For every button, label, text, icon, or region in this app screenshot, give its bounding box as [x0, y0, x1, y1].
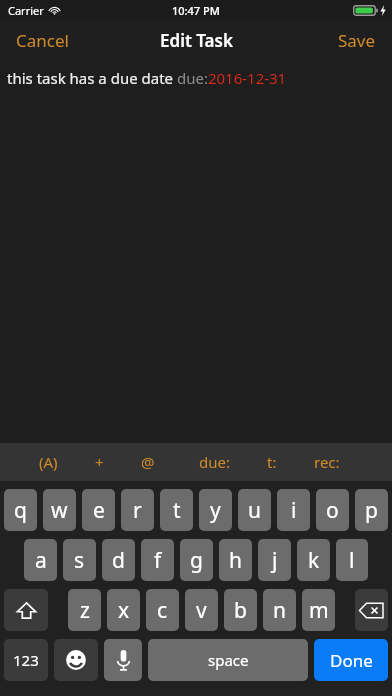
button[interactable]: space [148, 639, 308, 681]
staticText: 10:47 PM [172, 3, 220, 18]
button[interactable]: a [24, 539, 57, 581]
button[interactable]: rec: [304, 445, 350, 479]
staticText: k [308, 546, 320, 575]
staticText: u [248, 496, 261, 525]
staticText: (A) [39, 452, 58, 472]
staticText: 123 [13, 650, 39, 670]
button[interactable]: j [258, 539, 291, 581]
staticText: g [190, 546, 203, 575]
staticText: d [112, 546, 125, 575]
button[interactable]: Save [322, 22, 392, 59]
staticText: z [80, 596, 90, 625]
button[interactable]: u [238, 489, 271, 531]
button[interactable]: y [199, 489, 232, 531]
button[interactable]: h [219, 539, 252, 581]
button[interactable]: k [297, 539, 330, 581]
button[interactable]: c [146, 589, 179, 631]
staticText: rec: [314, 452, 340, 472]
staticText: w [51, 496, 68, 525]
button[interactable]: o [316, 489, 349, 531]
staticText: @ [141, 452, 155, 472]
button[interactable]: Emoji keyboard [54, 639, 98, 681]
staticText: v [196, 596, 207, 625]
button[interactable]: due: [189, 445, 240, 479]
button[interactable]: z [68, 589, 101, 631]
staticText: l [349, 546, 355, 575]
button[interactable]: Done [314, 639, 388, 681]
button[interactable]: e [82, 489, 115, 531]
staticText: f [154, 546, 162, 575]
button[interactable]: Backspace [355, 589, 388, 631]
staticText: Done [330, 649, 373, 672]
button[interactable]: q [4, 489, 37, 531]
staticText: Cancel [16, 29, 69, 52]
staticText: e [93, 496, 105, 525]
staticText: x [118, 596, 130, 625]
button[interactable]: + [85, 445, 114, 479]
staticText: j [272, 546, 278, 575]
staticText: + [95, 452, 104, 472]
staticText: s [74, 546, 85, 575]
button[interactable]: t: [257, 445, 287, 479]
button[interactable]: this task has a due date due:2016-12-31 [0, 59, 392, 443]
button[interactable]: @ [131, 445, 165, 479]
staticText: c [157, 596, 168, 625]
staticText: h [229, 546, 242, 575]
button[interactable]: g [180, 539, 213, 581]
button[interactable]: w [43, 489, 76, 531]
button[interactable]: l [336, 539, 368, 581]
button[interactable]: i [277, 489, 310, 531]
staticText: m [309, 596, 329, 625]
button[interactable]: f [141, 539, 174, 581]
button[interactable]: s [63, 539, 96, 581]
button[interactable]: (A) [29, 445, 68, 479]
staticText: p [365, 496, 378, 525]
staticText: a [35, 546, 47, 575]
button[interactable]: b [224, 589, 257, 631]
staticText: y [210, 496, 221, 525]
staticText: o [326, 496, 339, 525]
staticText: space [208, 650, 249, 670]
button[interactable]: p [355, 489, 388, 531]
button[interactable]: v [185, 589, 218, 631]
staticText: due: [199, 452, 230, 472]
staticText: this task has a due date due:2016-12-31 [7, 68, 287, 88]
staticText: Edit Task [160, 29, 233, 52]
button[interactable]: n [263, 589, 296, 631]
button[interactable]: Cancel [0, 22, 85, 59]
staticText: Carrier [8, 3, 44, 18]
staticText: q [14, 496, 27, 525]
button[interactable]: t [160, 489, 193, 531]
button[interactable]: 123 [4, 639, 48, 681]
staticText: b [234, 596, 247, 625]
staticText: t [173, 496, 181, 525]
staticText: r [133, 496, 142, 525]
button[interactable]: Shift [4, 589, 48, 631]
button[interactable]: m [302, 589, 335, 631]
button[interactable]: x [107, 589, 140, 631]
staticText: Save [338, 29, 376, 52]
staticText: t: [267, 452, 277, 472]
button[interactable]: Dictation [104, 639, 142, 681]
button[interactable]: d [102, 539, 135, 581]
staticText: n [273, 596, 286, 625]
staticText: i [291, 496, 297, 525]
button[interactable]: r [121, 489, 154, 531]
